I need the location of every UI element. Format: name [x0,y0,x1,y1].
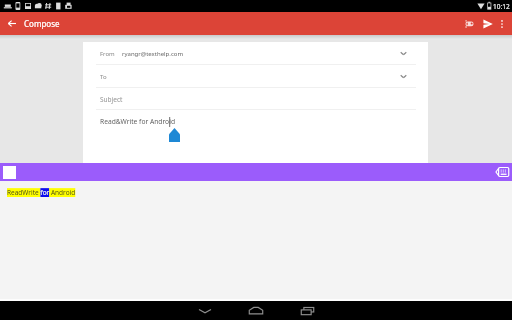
staticText: Read&Write for Android [100,117,175,126]
button[interactable]: Send [478,12,498,35]
button[interactable]: More options [494,12,510,35]
staticText: Compose [24,18,60,29]
button[interactable]: Recent apps [287,301,327,320]
staticText: From [100,50,115,58]
button[interactable]: Back [185,301,225,320]
button[interactable]: Hide keyboard [494,163,510,181]
button[interactable]: Navigate up [1,12,23,35]
staticText: To [100,73,107,81]
staticText: Subject [100,95,123,104]
button[interactable]: Attach file [459,12,479,35]
button[interactable]: Home [236,301,276,320]
staticText: ryangr@texthelp.com [122,50,184,58]
staticText: ReadWrite for Android [7,188,76,197]
staticText: 10:12 [493,2,510,11]
